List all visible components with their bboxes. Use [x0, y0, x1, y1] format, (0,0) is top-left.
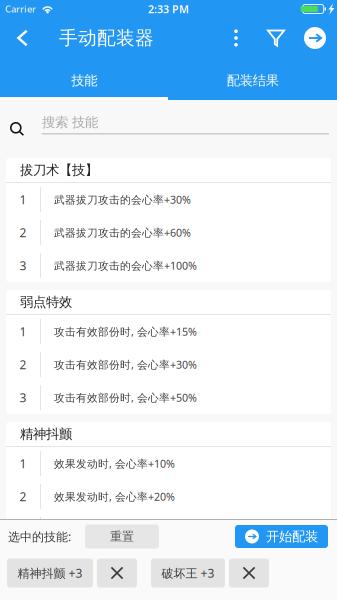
button[interactable]: 3	[6, 249, 331, 282]
button[interactable]: Remove 精神抖颤 +3	[97, 558, 137, 587]
staticText: 攻击有效部份时, 会心率+30%	[54, 357, 197, 372]
button[interactable]: 2	[6, 216, 331, 249]
button[interactable]: 1	[6, 447, 331, 480]
button[interactable]: 3	[6, 513, 331, 546]
button[interactable]: 开始配装	[235, 525, 328, 548]
staticText: 精神抖颤 +3	[17, 565, 82, 581]
button[interactable]: 2	[6, 480, 331, 513]
button[interactable]: 配装结果	[168, 58, 337, 97]
staticText: 武器拔刀攻击的会心率+60%	[54, 225, 191, 240]
staticText: 效果发动时, 会心率+10%	[54, 456, 175, 471]
staticText: 1	[19, 455, 26, 471]
button[interactable]: 精神抖颤 +3	[7, 558, 93, 587]
button[interactable]: Remove 破坏王 +3	[229, 558, 269, 587]
staticText: 攻击有效部份时, 会心率+15%	[54, 324, 197, 339]
staticText: 效果发动时, 会心率+30%	[54, 522, 175, 537]
staticText: 3	[19, 257, 26, 273]
staticText: 武器拔刀攻击的会心率+100%	[54, 258, 197, 273]
staticText: 开始配装	[266, 528, 318, 545]
staticText: 拔刀术【技】	[20, 162, 98, 178]
staticText: 选中的技能:	[8, 528, 71, 544]
staticText: 破坏王 +3	[161, 565, 214, 581]
staticText: 技能	[71, 72, 97, 89]
staticText: 配装结果	[227, 72, 279, 89]
button[interactable]: 1	[6, 315, 331, 348]
button[interactable]: Next	[299, 18, 331, 58]
staticText: Carrier	[5, 3, 36, 15]
staticText: 武器拔刀攻击的会心率+30%	[54, 192, 191, 207]
staticText: 搜索 技能	[42, 114, 98, 130]
staticText: 效果发动时, 会心率+20%	[54, 489, 175, 504]
staticText: 重置	[110, 529, 134, 544]
staticText: 2:33 PM	[148, 2, 189, 16]
staticText: 攻击有效部份时, 会心率+50%	[54, 390, 197, 405]
button[interactable]: Back	[6, 18, 39, 58]
staticText: 1	[19, 191, 26, 207]
button[interactable]: 破坏王 +3	[151, 558, 225, 587]
button[interactable]: Filter	[260, 18, 292, 58]
staticText: 2	[19, 224, 26, 240]
button[interactable]: 1	[6, 183, 331, 216]
button[interactable]: 重置	[85, 524, 159, 548]
button[interactable]: 技能	[0, 58, 168, 97]
button[interactable]: 3	[6, 381, 331, 414]
staticText: 手动配装器	[59, 26, 154, 49]
button[interactable]: 2	[6, 348, 331, 381]
button[interactable]: 搜索 技能	[0, 100, 337, 158]
staticText: 2	[19, 356, 26, 372]
staticText: 弱点特效	[20, 294, 72, 310]
staticText: 1	[19, 323, 26, 339]
staticText: 3	[19, 389, 26, 405]
staticText: 精神抖颤	[20, 426, 72, 442]
button[interactable]: More options	[223, 18, 249, 58]
staticText: 3	[19, 521, 26, 537]
staticText: 2	[19, 488, 26, 504]
